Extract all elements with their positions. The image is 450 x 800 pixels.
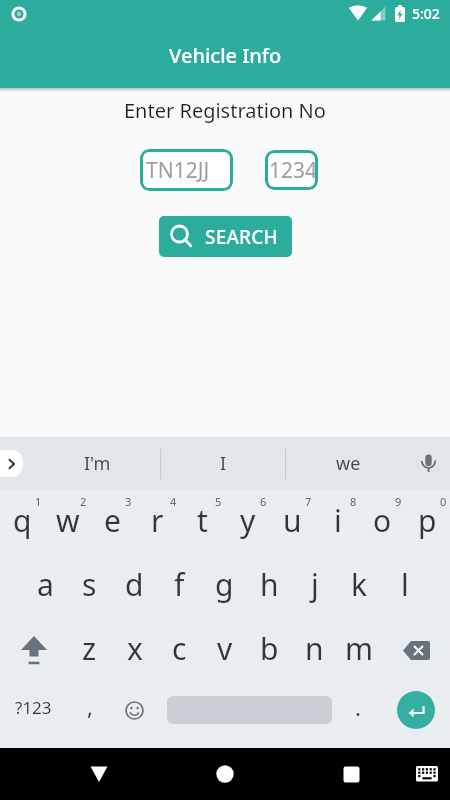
staticText: I'm	[84, 451, 111, 476]
staticText: r	[151, 500, 164, 541]
staticText: m	[345, 628, 374, 669]
staticText: w	[56, 500, 80, 541]
button[interactable]: q	[0, 490, 45, 554]
staticText: we	[336, 451, 361, 476]
button[interactable]: SEARCH	[159, 216, 292, 257]
staticText: 3	[125, 494, 132, 509]
staticText: 7	[305, 494, 312, 509]
staticText: e	[104, 500, 121, 541]
staticText: d	[125, 564, 144, 605]
staticText: g	[215, 564, 234, 605]
button[interactable]: s	[67, 554, 112, 618]
staticText: 1	[35, 494, 42, 509]
staticText: 1234	[269, 156, 318, 185]
staticText: ?123	[15, 696, 52, 719]
staticText: a	[37, 564, 54, 605]
button[interactable]	[415, 762, 439, 786]
button[interactable]	[112, 682, 157, 738]
button[interactable]	[382, 618, 450, 682]
button[interactable]: 1234	[265, 150, 318, 190]
staticText: 6	[260, 494, 267, 509]
staticText: 0	[440, 494, 447, 509]
button[interactable]: I	[161, 437, 285, 490]
staticText: x	[127, 628, 143, 669]
staticText: b	[260, 628, 279, 669]
staticText: z	[82, 628, 97, 669]
staticText: s	[82, 564, 97, 605]
staticText: 4	[170, 494, 177, 509]
button[interactable]: h	[247, 554, 292, 618]
staticText: Enter Registration No	[124, 97, 326, 124]
button[interactable]: y	[225, 490, 270, 554]
staticText: o	[373, 500, 392, 541]
staticText: h	[260, 564, 279, 605]
staticText: 2	[80, 494, 87, 509]
button[interactable]: p	[405, 490, 450, 554]
button[interactable]: a	[23, 554, 67, 618]
button[interactable]: t	[180, 490, 225, 554]
staticText: 8	[350, 494, 357, 509]
staticText: c	[172, 628, 187, 669]
button[interactable]	[0, 618, 67, 682]
button[interactable]: n	[292, 618, 337, 682]
button[interactable]	[288, 748, 414, 800]
staticText: Vehicle Info	[169, 42, 282, 69]
staticText: ,	[87, 691, 93, 721]
button[interactable]: w	[45, 490, 90, 554]
button[interactable]: e	[90, 490, 135, 554]
button[interactable]: .	[337, 682, 382, 738]
button[interactable]	[0, 450, 23, 477]
button[interactable]: b	[247, 618, 292, 682]
staticText: n	[305, 628, 324, 669]
button[interactable]: x	[112, 618, 157, 682]
button[interactable]: l	[382, 554, 427, 618]
button[interactable]: I'm	[35, 437, 160, 490]
staticText: i	[334, 500, 342, 541]
staticText: 5	[215, 494, 222, 509]
button[interactable]: g	[202, 554, 247, 618]
staticText: y	[240, 500, 256, 541]
button[interactable]: k	[337, 554, 382, 618]
button[interactable]	[418, 454, 438, 474]
staticText: 5:02	[412, 4, 440, 23]
button[interactable]: m	[337, 618, 382, 682]
button[interactable]: u	[270, 490, 315, 554]
staticText: l	[401, 564, 409, 605]
button[interactable]: j	[292, 554, 337, 618]
staticText: .	[355, 692, 361, 722]
staticText: I	[220, 451, 227, 476]
staticText: k	[351, 564, 368, 605]
staticText: t	[197, 500, 208, 541]
staticText: u	[283, 500, 302, 541]
button[interactable]: d	[112, 554, 157, 618]
button[interactable]: we	[286, 437, 410, 490]
staticText: q	[13, 500, 32, 541]
button[interactable]	[157, 682, 337, 738]
staticText: p	[418, 500, 437, 541]
button[interactable]	[382, 682, 450, 738]
staticText: j	[311, 564, 319, 605]
staticText: v	[217, 628, 233, 669]
button[interactable]: i	[315, 490, 360, 554]
button[interactable]: f	[157, 554, 202, 618]
button[interactable]: TN12JJ	[140, 149, 233, 191]
button[interactable]	[36, 748, 162, 800]
button[interactable]: z	[67, 618, 112, 682]
staticText: f	[174, 564, 185, 605]
button[interactable]: c	[157, 618, 202, 682]
button[interactable]: o	[360, 490, 405, 554]
button[interactable]: v	[202, 618, 247, 682]
button[interactable]: ?123	[0, 682, 67, 738]
staticText: 9	[395, 494, 402, 509]
staticText: TN12JJ	[146, 156, 210, 185]
button[interactable]	[162, 748, 288, 800]
staticText: SEARCH	[205, 224, 278, 250]
button[interactable]: r	[135, 490, 180, 554]
button[interactable]: ,	[67, 682, 112, 738]
